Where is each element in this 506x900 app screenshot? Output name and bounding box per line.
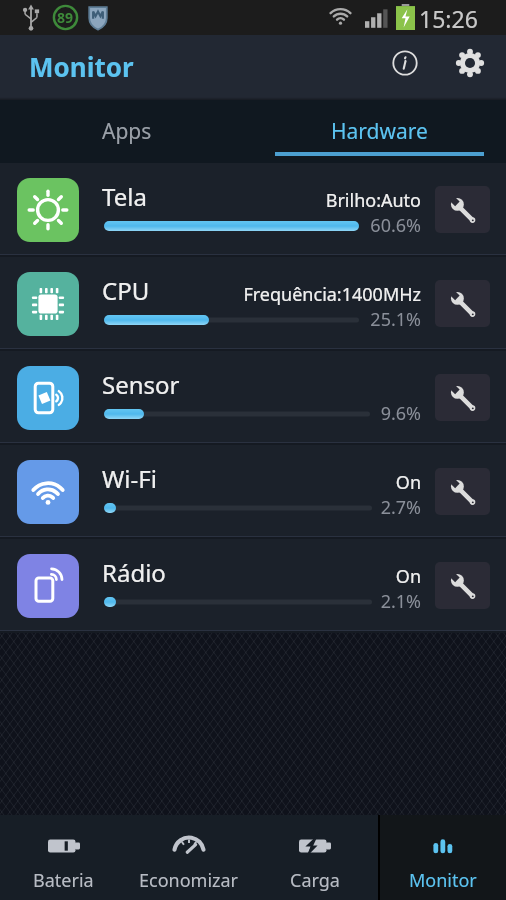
staticText: Wi-Fi [102,462,157,495]
button[interactable]: Settings for Sensor [435,374,490,421]
staticText: Hardware [331,117,428,146]
button[interactable]: Settings [442,35,498,91]
button[interactable]: Tela [0,163,506,257]
staticText: Apps [102,117,152,146]
staticText: CPU [102,274,150,307]
button[interactable]: Settings for Wi-Fi [435,468,490,515]
button[interactable]: Settings for Tela [435,186,490,233]
staticText: 2.7% [380,495,421,520]
button[interactable]: Rádio [0,539,506,633]
button[interactable]: Settings for CPU [435,280,490,327]
staticText: Monitor [29,49,134,84]
staticText: 9.6% [380,401,421,426]
staticText: Rádio [102,556,166,589]
staticText: 60.6% [370,213,421,238]
staticText: 25.1% [370,307,421,332]
button[interactable]: Wi-Fi [0,445,506,539]
button[interactable]: Info [377,35,433,91]
button[interactable]: Carga [252,815,378,900]
button[interactable]: Economizar [126,815,252,900]
staticText: 15:26 [419,3,478,34]
staticText: 2.1% [380,589,421,614]
staticText: Brilho:Auto [325,188,421,213]
button[interactable]: Bateria [0,815,126,900]
staticText: On [395,564,421,589]
staticText: 89 [57,8,74,27]
button[interactable]: CPU [0,257,506,351]
staticText: Bateria [33,868,94,893]
staticText: On [395,470,421,495]
staticText: Frequência:1400MHz [243,282,421,307]
staticText: Monitor [409,868,477,893]
staticText: Carga [290,868,340,893]
button[interactable]: Monitor [380,815,506,900]
button[interactable]: Hardware [253,100,506,163]
button[interactable]: Settings for Rádio [435,562,490,609]
staticText: Tela [102,180,147,213]
staticText: Sensor [102,368,180,401]
button[interactable]: Sensor [0,351,506,445]
staticText: Economizar [139,868,239,893]
button[interactable]: Apps [0,100,253,163]
